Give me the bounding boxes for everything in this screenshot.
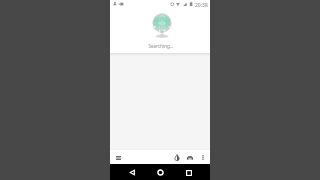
button[interactable]: More options	[197, 152, 208, 163]
staticText: Searching...	[111, 43, 211, 49]
button[interactable]: Invert colors	[171, 152, 182, 163]
button[interactable]: Menu	[113, 152, 124, 163]
button[interactable]: Recents	[182, 166, 195, 179]
staticText: 20:38	[195, 2, 208, 9]
button[interactable]: Print	[184, 152, 195, 163]
button[interactable]: Back	[126, 166, 139, 179]
button[interactable]: Home	[154, 166, 167, 179]
